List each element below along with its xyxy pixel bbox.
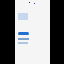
button[interactable] — [18, 32, 29, 35]
